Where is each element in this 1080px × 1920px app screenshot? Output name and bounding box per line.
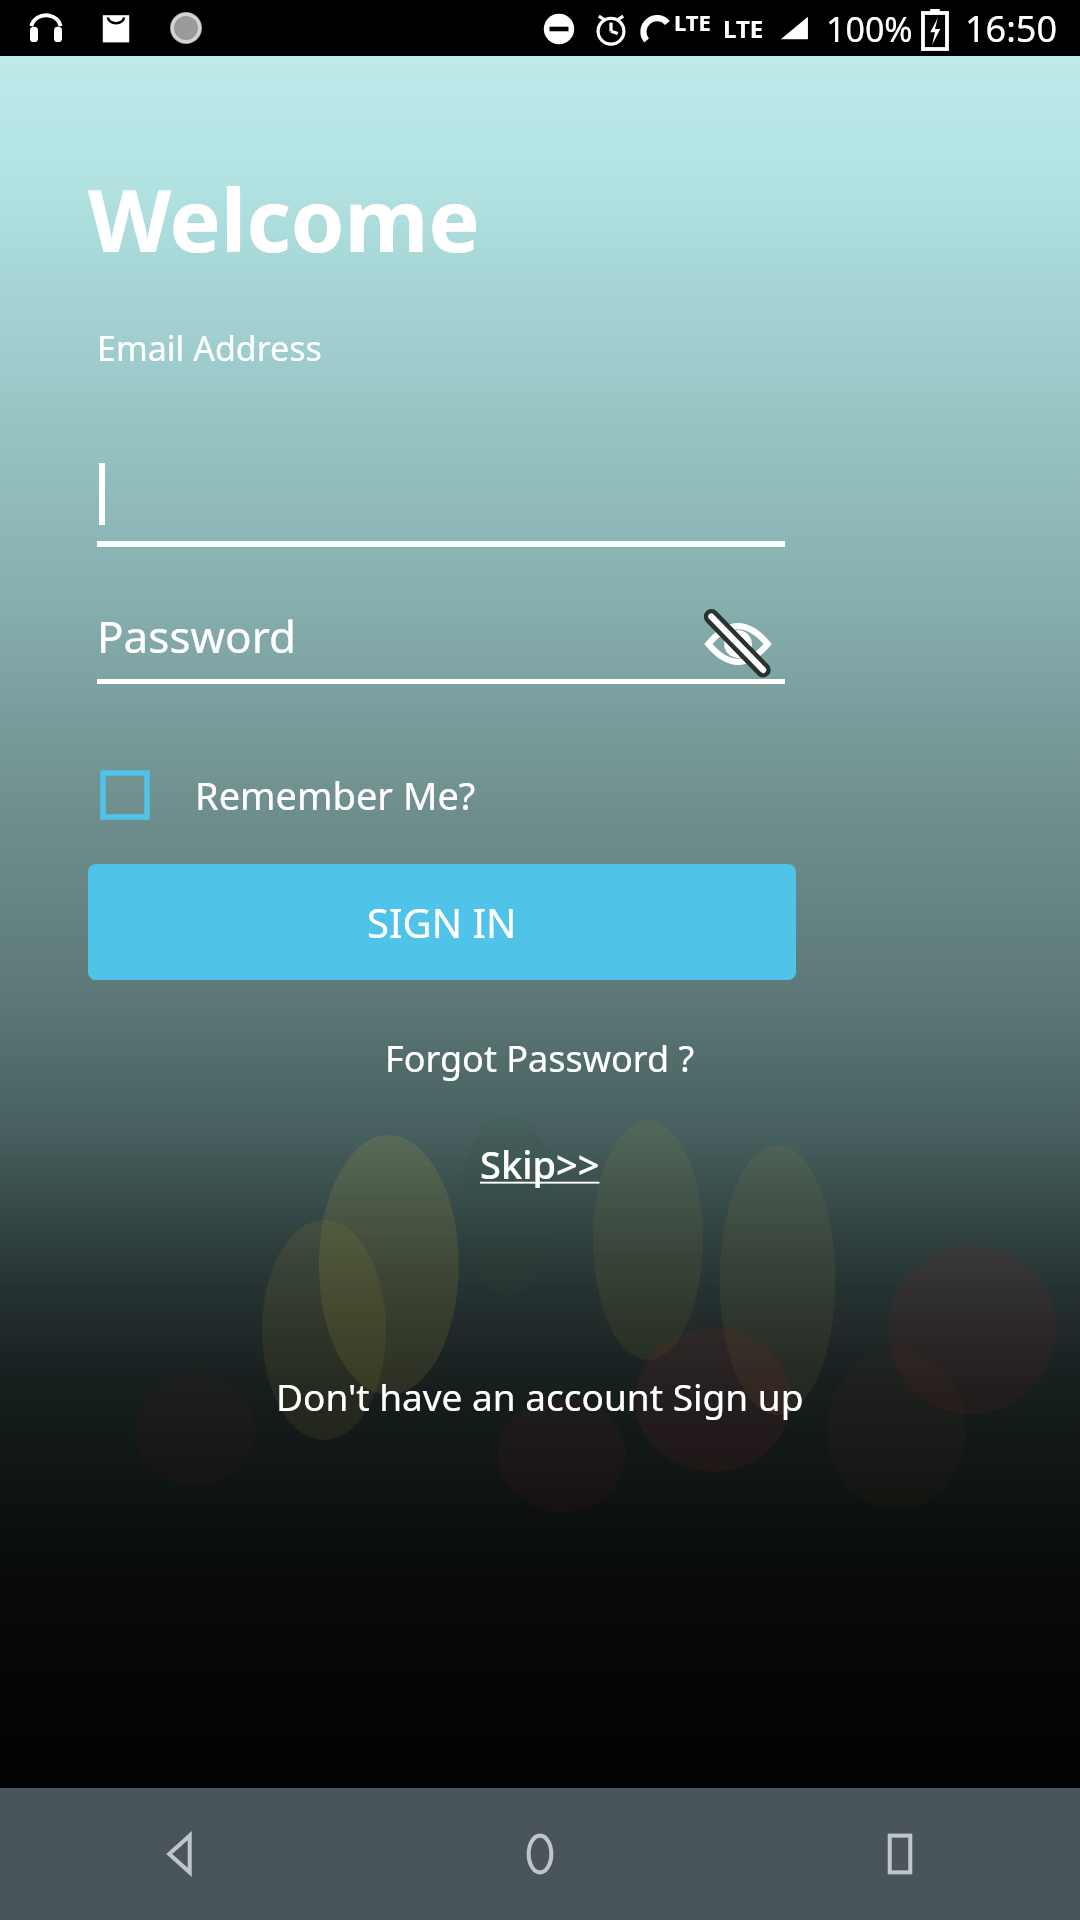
staticText: 16:50 [965, 4, 1058, 53]
staticText: LTE [674, 7, 711, 37]
staticText: Email Address [97, 325, 322, 371]
button[interactable]: Show password [690, 596, 786, 692]
button[interactable]: Forgot Password ? [371, 1026, 709, 1091]
staticText: Don't have an account Sign up [276, 1371, 804, 1421]
button[interactable]: Recents [720, 1788, 1080, 1920]
button[interactable]: Remember Me? [100, 755, 476, 835]
staticText: Welcome [88, 160, 480, 277]
button[interactable] [97, 395, 785, 555]
staticText: Skip>> [480, 1138, 600, 1190]
staticText: 100% [826, 6, 913, 52]
staticText: Password [97, 606, 297, 666]
staticText: Remember Me? [195, 769, 476, 821]
staticText: LTE [723, 12, 764, 45]
button[interactable]: Back [0, 1788, 360, 1920]
staticText: Forgot Password ? [385, 1034, 695, 1083]
staticText: SIGN IN [367, 895, 517, 949]
button[interactable]: Home [360, 1788, 720, 1920]
button[interactable]: SIGN IN [88, 864, 796, 980]
button[interactable]: Password [97, 600, 785, 685]
button[interactable]: Don't have an account Sign up [260, 1363, 820, 1429]
button[interactable]: Skip>> [466, 1132, 614, 1196]
